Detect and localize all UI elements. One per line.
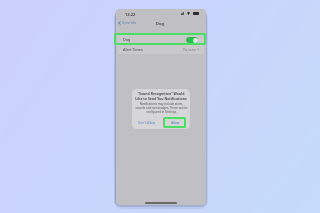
button[interactable]: Allow [161,116,190,129]
staticText: Tri-tone [183,47,196,52]
button[interactable]: Alert Tones [117,45,204,54]
staticText: Don't Allow [138,121,155,125]
staticText: Dog [123,37,131,42]
button[interactable]: Sounds [117,19,136,26]
staticText: Allow [171,121,180,125]
staticText: 12:22 [125,12,136,17]
staticText: Sounds [122,20,137,26]
staticText: Dog [156,21,164,26]
button[interactable]: Dog [117,34,204,45]
staticText: “Sound Recognition” Would Like to Send Y… [135,91,187,101]
button[interactable]: Don't Allow [132,116,161,129]
staticText: Alert Tones [123,47,143,52]
staticText: Notifications may include alerts, sounds… [135,102,188,114]
